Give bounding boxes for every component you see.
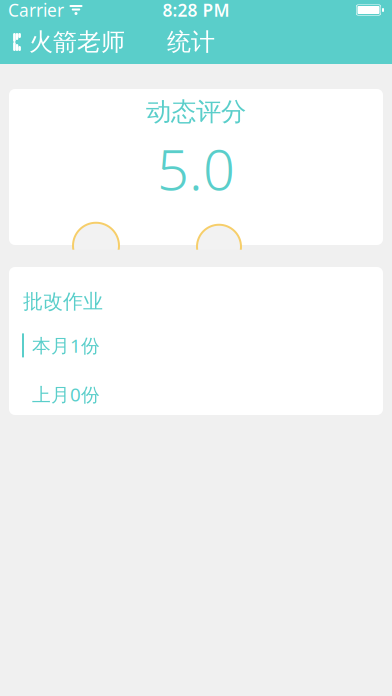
staticText: Carrier — [8, 0, 64, 21]
staticText: 5.0 — [157, 131, 235, 206]
button[interactable]: 本月1份 — [9, 329, 383, 362]
staticText: 动态评分 — [146, 96, 246, 127]
button[interactable]: Back to 火箭老师 — [0, 20, 135, 64]
staticText: 本月1份 — [32, 333, 100, 358]
staticText: 8:28 PM — [162, 0, 229, 21]
staticText: 上月0份 — [32, 382, 100, 407]
staticText: 火箭老师 — [29, 27, 125, 57]
button[interactable]: 上月0份 — [9, 378, 383, 411]
staticText: 批改作业 — [23, 289, 103, 314]
staticText: 统计 — [167, 27, 215, 57]
